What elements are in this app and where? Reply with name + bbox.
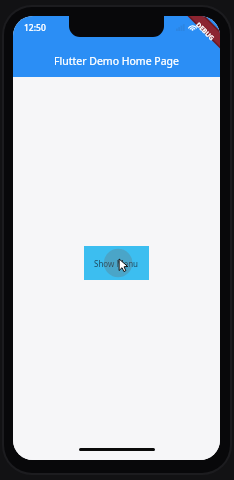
staticText: Show Menu [94, 258, 139, 269]
staticText: Flutter Demo Home Page [54, 54, 179, 68]
staticText: 12:50 [24, 22, 46, 34]
other: Debug banner [176, 16, 220, 60]
staticText: DEBUG [194, 20, 217, 43]
button[interactable]: Show Menu [84, 246, 149, 280]
